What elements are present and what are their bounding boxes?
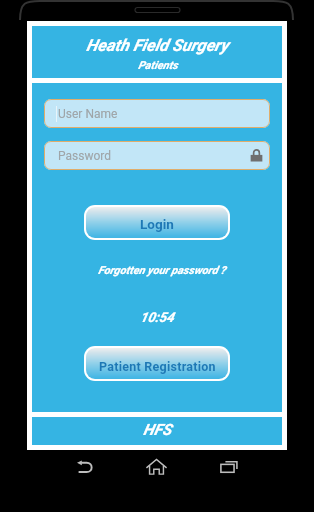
button[interactable]: Back (69, 451, 101, 483)
staticText: Patients (138, 59, 178, 72)
button[interactable]: HFS (32, 417, 282, 445)
button[interactable]: Recent apps (213, 451, 245, 483)
staticText: Patient Registration (99, 359, 216, 374)
button[interactable]: Forgotten your password ? (98, 264, 226, 277)
staticText: Login (140, 216, 174, 232)
staticText: User Name (58, 107, 118, 121)
button[interactable]: Patient Registration (86, 348, 228, 379)
button[interactable]: Home (140, 450, 172, 482)
staticText: Password (58, 149, 112, 163)
button[interactable]: Password (44, 141, 270, 170)
button[interactable]: User Name (44, 99, 270, 128)
staticText: Heath Field Surgery (86, 36, 229, 55)
staticText: 10:54 (140, 309, 174, 325)
staticText: HFS (143, 421, 172, 439)
button[interactable]: Login (86, 207, 228, 238)
